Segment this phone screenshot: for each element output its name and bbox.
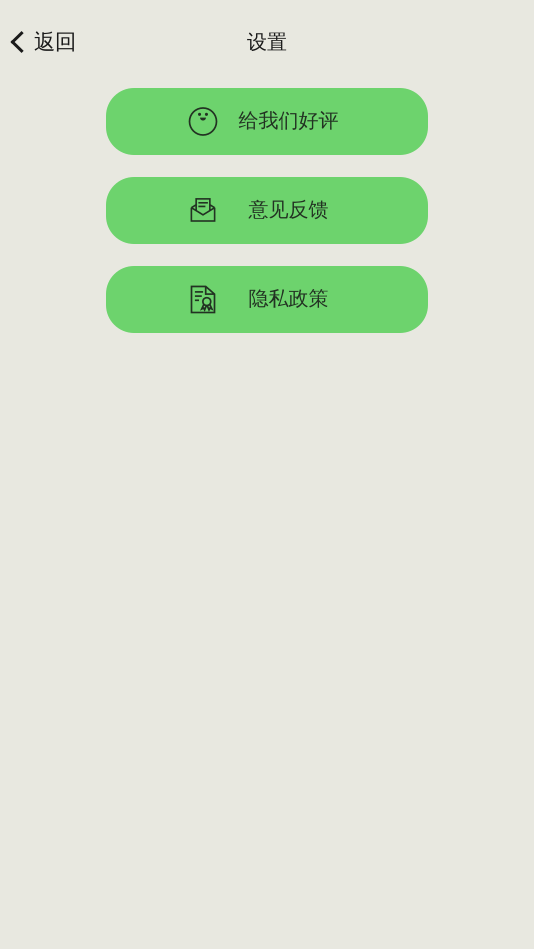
button[interactable]: 隐私政策: [106, 266, 428, 333]
staticText: 隐私政策: [248, 286, 328, 311]
staticText: 意见反馈: [248, 197, 328, 222]
button[interactable]: 意见反馈: [106, 177, 428, 244]
button[interactable]: 给我们好评: [106, 88, 428, 155]
staticText: 设置: [247, 30, 287, 54]
staticText: 返回: [34, 29, 76, 55]
staticText: 给我们好评: [238, 108, 338, 133]
button[interactable]: 返回: [0, 20, 86, 64]
